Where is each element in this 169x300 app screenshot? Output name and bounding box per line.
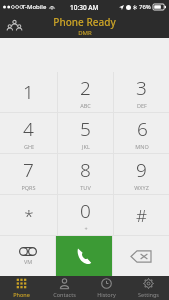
staticText: T-Mobile <box>22 3 47 11</box>
button[interactable]: 5 <box>58 113 113 153</box>
staticText: Phone <box>13 291 30 298</box>
staticText: TUV <box>80 184 91 191</box>
button[interactable]: 1 <box>0 72 57 112</box>
button[interactable]: Phone <box>0 276 43 300</box>
button[interactable]: Call <box>56 236 112 276</box>
staticText: 9 <box>136 157 147 183</box>
button[interactable]: Settings <box>127 276 169 300</box>
staticText: Phone Ready <box>53 15 116 29</box>
staticText: # <box>136 204 147 227</box>
staticText: GHI <box>24 143 34 150</box>
staticText: History <box>97 291 116 298</box>
staticText: * <box>24 204 34 227</box>
staticText: 76% <box>139 3 151 11</box>
button[interactable]: * <box>0 195 57 235</box>
staticText: VM <box>24 258 33 265</box>
button[interactable]: Backspace <box>113 236 169 276</box>
button[interactable]: # <box>114 195 169 235</box>
button[interactable]: 8 <box>58 154 113 194</box>
staticText: DMR <box>78 29 92 37</box>
staticText: 1 <box>23 79 34 105</box>
staticText: 4 <box>23 116 34 142</box>
staticText: PQRS <box>21 184 36 191</box>
staticText: WXYZ <box>134 184 149 191</box>
staticText: Contacts <box>53 291 76 298</box>
staticText: MNO <box>135 143 149 150</box>
button[interactable]: Contacts <box>43 276 85 300</box>
staticText: 10:30 AM <box>70 3 99 12</box>
button[interactable]: 2 <box>58 72 113 112</box>
staticText: 5 <box>80 116 91 142</box>
staticText: DEF <box>137 102 147 109</box>
staticText: 7 <box>23 157 34 183</box>
button[interactable]: 9 <box>114 154 169 194</box>
button[interactable]: Contacts group <box>4 16 24 36</box>
staticText: 2 <box>80 75 91 101</box>
button[interactable]: 3 <box>114 72 169 112</box>
staticText: 8 <box>80 157 91 183</box>
button[interactable]: Voicemail <box>0 236 55 276</box>
staticText: 3 <box>136 75 147 101</box>
button[interactable]: 4 <box>0 113 57 153</box>
staticText: 0 <box>80 198 91 224</box>
staticText: 6 <box>137 116 148 142</box>
button[interactable]: History <box>85 276 127 300</box>
staticText: + <box>84 225 88 232</box>
staticText: JKL <box>82 143 90 150</box>
button[interactable]: 6 <box>114 113 169 153</box>
button[interactable]: 7 <box>0 154 57 194</box>
staticText: Settings <box>138 291 159 298</box>
staticText: ABC <box>80 102 91 109</box>
button[interactable]: 0 <box>58 195 113 235</box>
